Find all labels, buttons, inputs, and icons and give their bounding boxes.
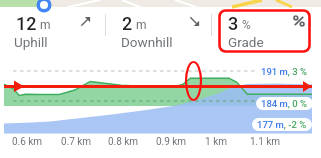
staticText: m	[40, 18, 51, 32]
staticText: 1 km	[194, 136, 238, 148]
button[interactable]: 2	[106, 7, 211, 52]
other: Grade	[293, 15, 305, 27]
staticText: 3	[228, 13, 239, 34]
staticText: 0.8 km	[101, 136, 145, 148]
staticText: 177 m, -2 %	[257, 119, 307, 130]
staticText: 0.6 km	[5, 136, 49, 148]
staticText: 184 m, 0 %	[261, 98, 308, 109]
staticText: m	[136, 18, 147, 32]
other: Downhill	[189, 16, 200, 27]
other: Uphill	[80, 16, 91, 27]
staticText: Grade	[228, 34, 264, 50]
staticText: %	[242, 18, 251, 32]
staticText: 12	[16, 13, 37, 34]
staticText: 1.1 km	[243, 136, 287, 148]
staticText: Uphill	[14, 34, 48, 50]
button[interactable]: 12	[0, 7, 106, 52]
staticText: 0.7 km	[54, 136, 98, 148]
staticText: 0.9 km	[149, 136, 193, 148]
staticText: Downhill	[121, 34, 173, 50]
button[interactable]: 3	[212, 7, 317, 52]
staticText: 2	[122, 13, 133, 34]
staticText: 191 m, 3 %	[261, 66, 308, 77]
